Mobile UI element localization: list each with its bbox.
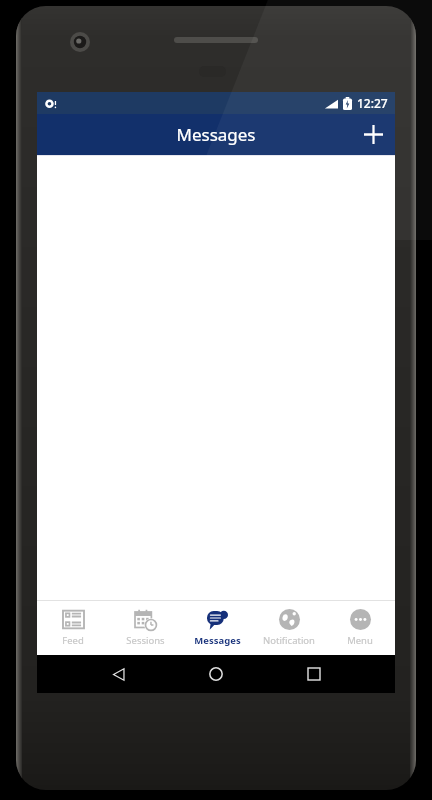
button[interactable]: New message <box>351 114 395 155</box>
staticText: Sessions <box>126 634 165 647</box>
staticText: Menu <box>347 634 373 647</box>
button[interactable]: Messages <box>181 601 253 655</box>
button[interactable]: Back <box>101 657 135 691</box>
button[interactable]: Feed <box>37 601 109 655</box>
staticText: Messages <box>176 123 256 146</box>
button[interactable]: Recents <box>297 657 331 691</box>
button[interactable]: Menu <box>325 601 395 655</box>
staticText: 12:27 <box>357 95 388 111</box>
button[interactable]: Home <box>199 657 233 691</box>
button[interactable]: Notification <box>253 601 325 655</box>
staticText: Notification <box>263 634 315 647</box>
button[interactable]: Sessions <box>109 601 181 655</box>
staticText: Messages <box>194 634 241 647</box>
staticText: Feed <box>62 634 84 647</box>
